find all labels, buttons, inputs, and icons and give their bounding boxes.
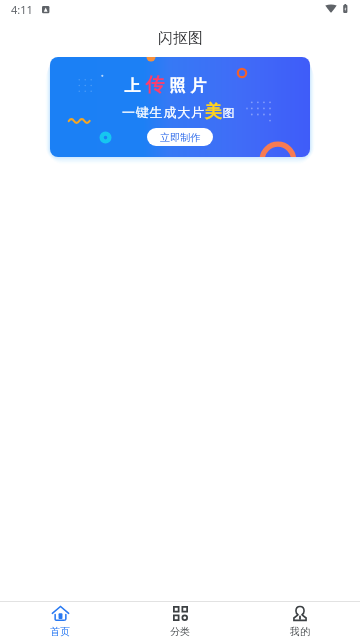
other: Home [52, 606, 69, 621]
staticText: 闪抠图 [158, 29, 203, 48]
staticText: 我的 [290, 625, 310, 638]
button[interactable]: Home [15, 602, 105, 640]
staticText: 一键生成大片美图 [122, 101, 236, 122]
button[interactable]: 上传照片 [50, 57, 310, 157]
staticText: 分类 [170, 625, 190, 638]
staticText: 首页 [50, 625, 70, 638]
button[interactable]: Categories [135, 602, 225, 640]
other: Categories [173, 606, 188, 621]
button[interactable]: 立即制作 [147, 128, 213, 146]
other: Profile [293, 606, 307, 621]
staticText: 立即制作 [160, 131, 200, 144]
button[interactable]: Profile [255, 602, 345, 640]
staticText: 上传照片 [122, 73, 209, 97]
staticText: 4:11 [11, 2, 33, 17]
